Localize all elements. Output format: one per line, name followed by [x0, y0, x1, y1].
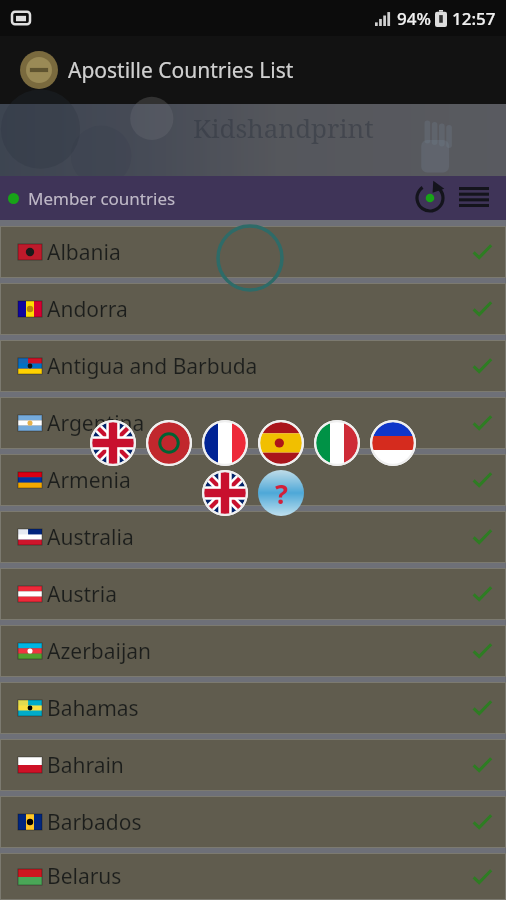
- button[interactable]: Austria: [0, 568, 506, 620]
- staticText: 12:57: [452, 7, 496, 30]
- staticText: 94%: [397, 7, 431, 30]
- button[interactable]: Barbados: [0, 796, 506, 848]
- staticText: Bahamas: [47, 694, 139, 723]
- button[interactable]: Bahrain: [0, 739, 506, 791]
- staticText: Antigua and Barbuda: [47, 352, 258, 381]
- button[interactable]: App icon: [20, 51, 58, 89]
- button[interactable]: Bahamas: [0, 682, 506, 734]
- staticText: Australia: [47, 523, 134, 552]
- staticText: Barbados: [47, 808, 142, 837]
- button[interactable]: Arabic: [146, 420, 192, 466]
- button[interactable]: Refresh: [410, 178, 450, 218]
- button[interactable]: Andorra: [0, 283, 506, 335]
- button[interactable]: Italian: [314, 420, 360, 466]
- staticText: Argentina: [47, 409, 145, 438]
- button[interactable]: English: [202, 470, 248, 516]
- button[interactable]: English: [90, 420, 136, 466]
- button[interactable]: Member countries: [8, 187, 176, 210]
- button[interactable]: Belarus: [0, 853, 506, 900]
- button[interactable]: Help: [258, 470, 304, 516]
- button[interactable]: Russian: [370, 420, 416, 466]
- button[interactable]: Albania: [0, 226, 506, 278]
- button[interactable]: Advertisement: [0, 104, 506, 176]
- button[interactable]: Australia: [0, 511, 506, 563]
- button[interactable]: Azerbaijan: [0, 625, 506, 677]
- staticText: Andorra: [47, 295, 128, 324]
- staticText: Member countries: [28, 187, 176, 210]
- button[interactable]: Spanish: [258, 420, 304, 466]
- staticText: Apostille Countries List: [68, 56, 294, 85]
- staticText: Albania: [47, 238, 121, 267]
- button[interactable]: French: [202, 420, 248, 466]
- staticText: Bahrain: [47, 751, 124, 780]
- staticText: Austria: [47, 580, 117, 609]
- staticText: Kidshandprint: [193, 110, 374, 145]
- button[interactable]: Antigua and Barbuda: [0, 340, 506, 392]
- staticText: Belarus: [47, 862, 122, 891]
- staticText: Azerbaijan: [47, 637, 152, 666]
- button[interactable]: Argentina: [0, 397, 506, 449]
- staticText: ?: [275, 475, 288, 512]
- button[interactable]: Menu: [454, 178, 494, 218]
- staticText: Armenia: [47, 466, 131, 495]
- button[interactable]: Armenia: [0, 454, 506, 506]
